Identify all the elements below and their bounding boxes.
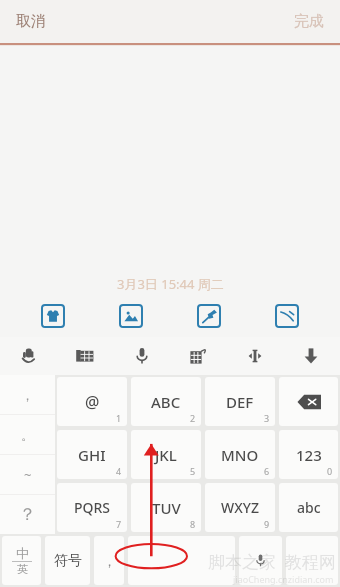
staticText: abc [297, 498, 321, 517]
staticText: 5 [190, 465, 196, 477]
staticText: 脚本之家 教程网 [208, 550, 336, 573]
staticText: ABC [151, 392, 181, 412]
button[interactable]: WXYZ [205, 483, 275, 532]
staticText: 3 [264, 412, 270, 424]
staticText: 2 [190, 412, 196, 424]
button[interactable]: JKL [131, 430, 201, 479]
button[interactable]: 中 [2, 536, 41, 585]
staticText: 123 [296, 445, 322, 465]
button[interactable]: PQRS [57, 483, 127, 532]
button[interactable]: TUV [131, 483, 201, 532]
staticText: MNO [221, 445, 259, 465]
staticText: 3月3日 15:44 周二 [117, 275, 224, 293]
staticText: 9 [264, 518, 270, 530]
button[interactable]: Keyboard layout [72, 343, 98, 369]
staticText: 完成 [294, 12, 324, 31]
button[interactable]: Hide keyboard [298, 343, 324, 369]
staticText: WXYZ [221, 498, 259, 517]
staticText: 取消 [16, 12, 46, 31]
button[interactable]: Voice input [239, 536, 282, 585]
staticText: 0 [327, 465, 333, 477]
button[interactable] [128, 536, 235, 585]
staticText: ~ [24, 466, 32, 484]
staticText: 4 [116, 465, 122, 477]
button[interactable]: ， [0, 375, 55, 414]
button[interactable]: Voice input [129, 343, 155, 369]
button[interactable]: abc [279, 483, 338, 532]
staticText: ， [21, 387, 34, 403]
button[interactable]: 完成 [278, 4, 340, 39]
staticText: 英 [17, 562, 28, 576]
button[interactable]: ， [94, 536, 124, 585]
staticText: jiaoCheng.cnzidian.com [233, 573, 334, 585]
staticText: GHI [78, 445, 106, 465]
staticText: DEF [226, 392, 254, 412]
staticText: 中 [16, 545, 29, 561]
staticText: 6 [264, 465, 270, 477]
staticText: 。 [21, 427, 34, 443]
staticText: 1 [116, 412, 122, 424]
button[interactable]: Photo [120, 305, 142, 327]
button[interactable]: MNO [205, 430, 275, 479]
button[interactable]: Move cursor [242, 343, 268, 369]
button[interactable]: 取消 [0, 4, 62, 39]
button[interactable]: Delete [279, 377, 338, 426]
button[interactable]: GHI [57, 430, 127, 479]
staticText: 8 [190, 518, 196, 530]
button[interactable]: DEF [205, 377, 275, 426]
button[interactable]: Draw [276, 305, 298, 327]
staticText: 符号 [54, 552, 82, 570]
button[interactable]: 符号 [45, 536, 90, 585]
button[interactable]: Handwriting [16, 343, 42, 369]
button[interactable]: ~ [0, 455, 55, 494]
staticText: TUV [152, 498, 181, 518]
button[interactable]: 123 [279, 430, 338, 479]
button[interactable]: Numpad [185, 343, 211, 369]
staticText: JKL [155, 445, 177, 465]
staticText: 7 [116, 518, 122, 530]
button[interactable] [286, 536, 338, 585]
staticText: ， [103, 553, 116, 569]
button[interactable]: Clothing [42, 305, 64, 327]
button[interactable]: ABC [131, 377, 201, 426]
button[interactable]: Pin [198, 305, 220, 327]
button[interactable]: @ [57, 377, 127, 426]
staticText: @ [85, 391, 100, 413]
staticText: PQRS [74, 498, 111, 517]
staticText: ？ [19, 504, 36, 525]
button[interactable]: ？ [0, 495, 55, 534]
